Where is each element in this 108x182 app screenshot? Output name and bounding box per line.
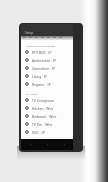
staticText: Generation - IP — [32, 66, 56, 70]
button[interactable]: Register - IP — [21, 80, 73, 88]
button[interactable]: Bedroom - Wire — [21, 112, 73, 120]
button[interactable]: Ambiscreen - IP — [21, 56, 73, 64]
button[interactable]: TV Livingroom — [21, 96, 73, 104]
staticText: TV Livingroom — [32, 98, 55, 102]
button[interactable]: RTV-BOX - IP — [21, 48, 73, 56]
staticText: Kitchen - Wire — [32, 106, 54, 110]
button[interactable]: Generation - IP — [21, 64, 73, 72]
staticText: Satellite/Player and Boxes — [26, 44, 55, 47]
button[interactable]: Setup — [21, 24, 73, 36]
button[interactable] — [21, 36, 73, 40]
staticText: DVD - IP — [32, 130, 45, 134]
button[interactable]: Kitchen - Wire — [21, 104, 73, 112]
staticText: TV Tim - Wire — [32, 122, 53, 126]
button[interactable]: Living - IP — [21, 72, 73, 80]
button[interactable]: TV Tim - Wire — [21, 120, 73, 128]
staticText: Ambiscreen - IP — [32, 58, 57, 62]
staticText: RTV-BOX - IP — [32, 50, 52, 54]
staticText: Setup — [25, 31, 34, 35]
staticText: Bedroom - Wire — [32, 114, 57, 118]
staticText: TV - Menu — [26, 92, 38, 95]
button[interactable]: DVD - IP — [21, 128, 73, 136]
staticText: Register - IP — [32, 82, 51, 86]
staticText: Living - IP — [32, 74, 48, 78]
